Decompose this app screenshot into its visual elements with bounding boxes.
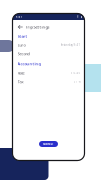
staticText: Yesterday 9:41 (60, 43, 80, 47)
staticText: € 0.45 (70, 71, 80, 75)
button[interactable]: Back (15, 23, 25, 31)
staticText: Accounting (17, 61, 40, 66)
button[interactable]: Rate (12, 70, 84, 76)
staticText: ıl ▮ (76, 15, 81, 18)
button[interactable]: Tax (12, 79, 84, 85)
staticText: Rate (17, 70, 24, 76)
staticText: Start (17, 33, 27, 39)
staticText: Euro (17, 42, 25, 48)
staticText: Tax (17, 79, 23, 84)
button[interactable]: Second (12, 51, 84, 57)
staticText: Second (17, 51, 29, 56)
button[interactable]: SUBMIT (39, 141, 58, 147)
button[interactable]: Euro (12, 42, 84, 48)
staticText: 21 % (73, 80, 80, 83)
staticText: Trip Settings (25, 24, 49, 30)
staticText: SUBMIT (43, 142, 54, 146)
staticText: 9:41 (15, 15, 22, 18)
